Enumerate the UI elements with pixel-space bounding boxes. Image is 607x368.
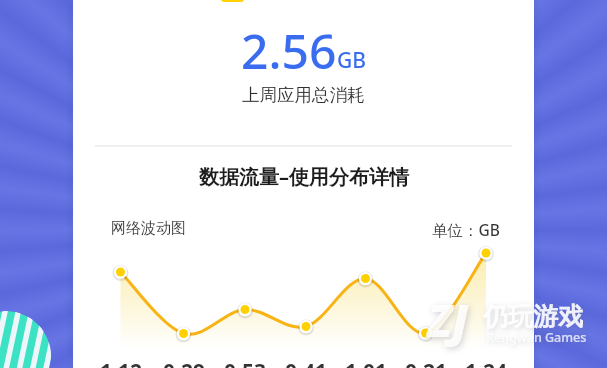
staticText: GB: [337, 46, 367, 75]
staticText: 1.12: [100, 357, 142, 368]
staticText: 2.56: [241, 18, 337, 83]
staticText: 0.41: [285, 357, 327, 368]
staticText: ZJ: [428, 290, 469, 350]
staticText: 单位：GB: [432, 219, 500, 240]
staticText: 仍玩游戏: [483, 301, 583, 332]
button[interactable]: [221, 0, 244, 2]
staticText: 1.01: [345, 357, 387, 368]
staticText: 网络波动图: [111, 219, 186, 238]
staticText: 数据流量–使用分布详情: [199, 163, 409, 190]
staticText: 1.24: [465, 357, 507, 368]
staticText: Rengwan Games: [486, 329, 587, 346]
staticText: 0.53: [224, 357, 266, 368]
staticText: 0.21: [405, 357, 447, 368]
staticText: 0.29: [163, 357, 205, 368]
staticText: 上周应用总消耗: [242, 84, 365, 106]
